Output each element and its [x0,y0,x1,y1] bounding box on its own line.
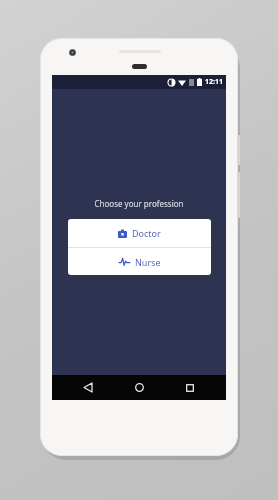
staticText: Doctor [132,227,161,239]
button[interactable]: Recent apps [175,375,205,400]
staticText: 12:11 [205,77,223,87]
staticText: Choose your profession [94,198,184,209]
button[interactable]: Home [124,375,154,400]
button[interactable]: Doctor [68,219,211,247]
staticText: Nurse [135,256,161,268]
button[interactable]: Back [73,375,103,400]
button[interactable]: Nurse [68,248,211,275]
